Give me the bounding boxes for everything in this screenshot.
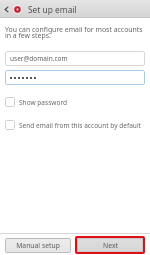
button[interactable] [5, 70, 145, 85]
button[interactable]: Next [77, 238, 143, 252]
staticText: Show password [19, 98, 67, 107]
staticText: Send email from this account by default [19, 121, 141, 130]
button[interactable]: Send email from this account by default [5, 120, 145, 130]
button[interactable]: Manual setup [5, 238, 71, 253]
staticText: Manual setup [16, 241, 60, 250]
staticText: You can configure email for most account… [5, 25, 145, 40]
button[interactable]: Show password [5, 97, 145, 107]
staticText: user@domain.com [10, 54, 68, 63]
staticText: Next [103, 241, 118, 250]
staticText: Set up email [28, 4, 77, 15]
button[interactable]: user@domain.com [5, 51, 145, 66]
button[interactable]: Back [0, 0, 12, 18]
